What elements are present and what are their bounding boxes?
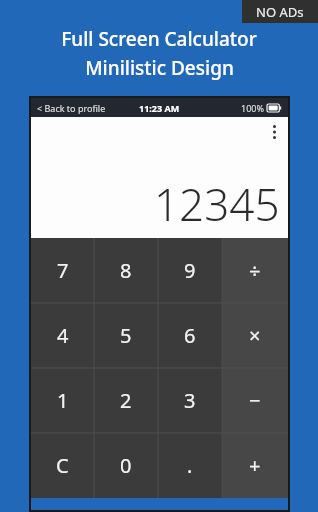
button[interactable]: 2 <box>94 368 158 433</box>
staticText: 6 <box>184 322 196 349</box>
staticText: 9 <box>184 257 196 284</box>
staticText: 7 <box>57 257 69 284</box>
staticText: 5 <box>120 322 132 349</box>
button[interactable]: 1 <box>31 368 94 433</box>
staticText: Minilistic Design <box>85 55 234 81</box>
button[interactable]: 5 <box>94 303 158 368</box>
button[interactable]: More options <box>265 123 283 141</box>
staticText: NO ADs <box>256 3 304 21</box>
button[interactable]: × <box>222 303 288 368</box>
staticText: 12345 <box>154 174 280 234</box>
staticText: ÷ <box>249 257 261 284</box>
staticText: 11:23 AM <box>139 102 180 114</box>
button[interactable]: < Back to profile <box>37 102 106 114</box>
button[interactable]: 7 <box>31 238 94 303</box>
staticText: 4 <box>57 322 69 349</box>
button[interactable]: 9 <box>158 238 222 303</box>
button[interactable]: 6 <box>158 303 222 368</box>
staticText: 1 <box>57 387 69 414</box>
staticText: . <box>187 452 193 479</box>
staticText: − <box>249 387 261 414</box>
button[interactable]: C <box>31 433 94 498</box>
button[interactable]: NO ADs <box>242 0 318 23</box>
staticText: 0 <box>120 452 132 479</box>
button[interactable]: 0 <box>94 433 158 498</box>
staticText: + <box>249 452 261 479</box>
staticText: Full Screen Calculator <box>61 26 257 52</box>
staticText: C <box>56 452 69 479</box>
button[interactable]: 4 <box>31 303 94 368</box>
staticText: × <box>249 322 261 349</box>
staticText: < Back to profile <box>37 102 106 114</box>
staticText: 100% <box>241 102 264 114</box>
button[interactable]: ÷ <box>222 238 288 303</box>
button[interactable]: + <box>222 433 288 498</box>
button[interactable]: − <box>222 368 288 433</box>
staticText: 8 <box>120 257 132 284</box>
button[interactable]: 8 <box>94 238 158 303</box>
staticText: 2 <box>120 387 132 414</box>
button[interactable]: 3 <box>158 368 222 433</box>
staticText: 3 <box>184 387 196 414</box>
button[interactable]: . <box>158 433 222 498</box>
